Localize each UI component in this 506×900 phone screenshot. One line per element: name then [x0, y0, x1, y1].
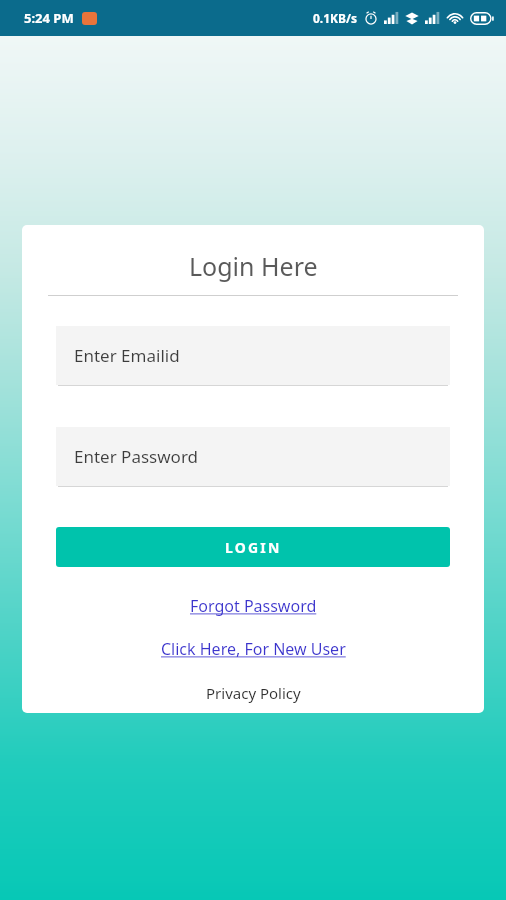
button[interactable]: LOGIN: [56, 527, 450, 567]
staticText: LOGIN: [225, 538, 282, 557]
staticText: 0.1KB/s: [313, 10, 358, 26]
staticText: Privacy Policy: [206, 683, 301, 703]
staticText: Enter Password: [74, 445, 199, 468]
staticText: Enter Emailid: [74, 344, 180, 367]
button[interactable]: Privacy Policy: [194, 679, 313, 707]
button[interactable]: Enter Emailid: [56, 326, 450, 386]
button[interactable]: Enter Password: [56, 427, 450, 487]
staticText: Login Here: [189, 249, 318, 283]
staticText: Forgot Password: [190, 595, 317, 617]
staticText: 5:24 PM: [24, 9, 74, 27]
button[interactable]: Click Here, For New User: [149, 633, 358, 665]
staticText: Click Here, For New User: [161, 638, 346, 660]
button[interactable]: Forgot Password: [178, 590, 329, 622]
